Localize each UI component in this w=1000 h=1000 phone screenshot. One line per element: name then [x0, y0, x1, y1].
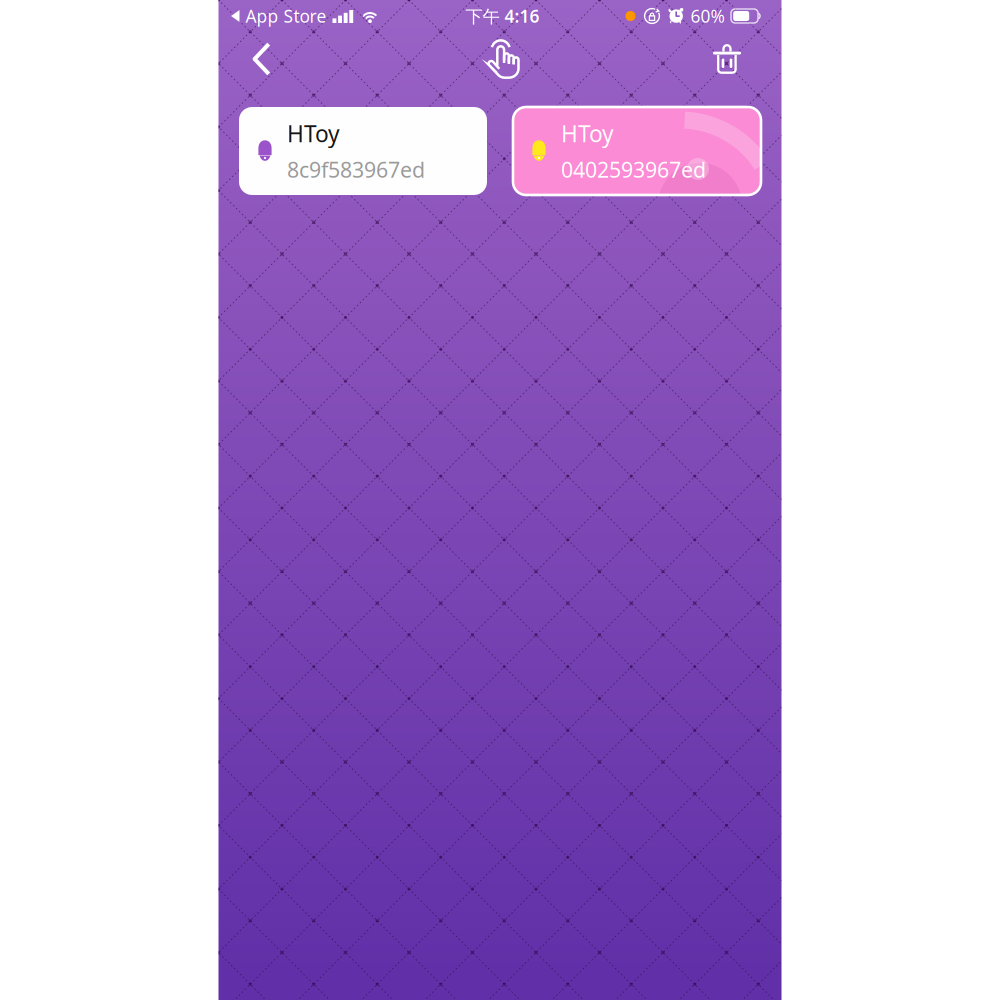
staticText: 下午 4:16 — [465, 4, 539, 27]
button[interactable]: Tap control — [462, 32, 521, 87]
staticText: 8c9f583967ed — [287, 155, 425, 184]
staticText: 60% — [690, 4, 724, 27]
button[interactable]: Delete — [698, 32, 767, 88]
staticText: HToy — [287, 118, 340, 148]
staticText: 0402593967ed — [561, 155, 706, 184]
staticText: App Store — [240, 4, 326, 27]
staticText: HToy — [561, 118, 614, 148]
button[interactable]: HToy — [239, 107, 487, 195]
button[interactable]: HToy — [513, 107, 761, 195]
button[interactable]: Back — [232, 33, 284, 87]
